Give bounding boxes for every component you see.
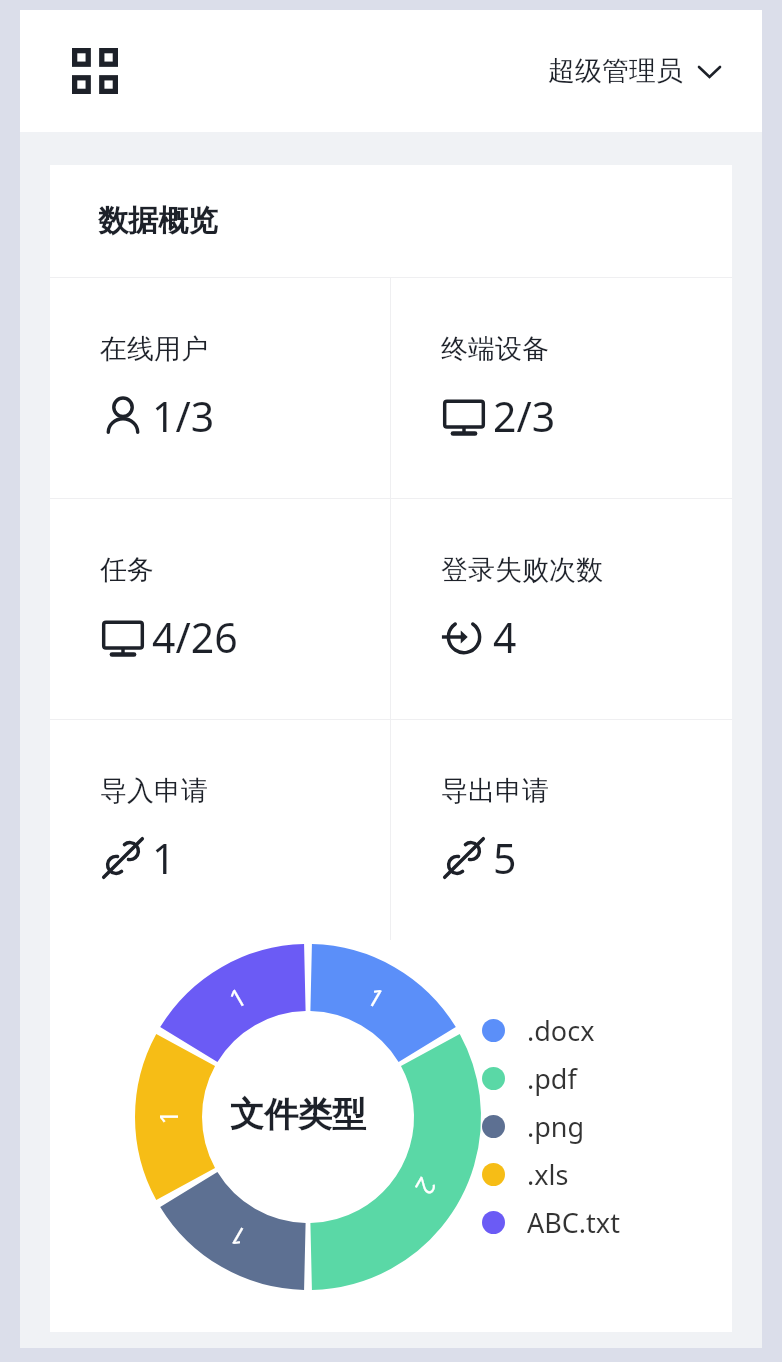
staticText: 1/3 xyxy=(152,388,215,444)
staticText: 终端设备 xyxy=(441,332,549,366)
button[interactable]: 在线用户 xyxy=(50,278,390,498)
staticText: 在线用户 xyxy=(100,332,208,366)
staticText: .pdf xyxy=(527,1060,577,1097)
button[interactable]: 登录失败次数 xyxy=(391,499,732,719)
staticText: 1 xyxy=(361,978,391,1015)
staticText: 4 xyxy=(493,609,517,665)
staticText: 数据概览 xyxy=(98,202,218,240)
staticText: .docx xyxy=(527,1012,595,1049)
staticText: 4/26 xyxy=(152,609,238,665)
staticText: 任务 xyxy=(100,553,154,587)
staticText: .png xyxy=(527,1108,585,1145)
staticText: 2 xyxy=(408,1172,445,1202)
button[interactable]: .png xyxy=(482,1102,585,1150)
staticText: 登录失败次数 xyxy=(441,553,603,587)
button[interactable]: 任务 xyxy=(50,499,390,719)
staticText: 文件类型 xyxy=(230,1093,366,1136)
button[interactable]: .docx xyxy=(482,1006,595,1054)
staticText: 导入申请 xyxy=(100,774,208,808)
button[interactable]: 导入申请 xyxy=(50,720,390,940)
button[interactable]: Apps menu xyxy=(66,42,124,100)
button[interactable]: .xls xyxy=(482,1150,569,1198)
button[interactable]: 终端设备 xyxy=(391,278,732,498)
staticText: ABC.txt xyxy=(527,1204,620,1241)
staticText: .xls xyxy=(527,1156,569,1193)
staticText: 5 xyxy=(493,830,517,886)
button[interactable]: 超级管理员 xyxy=(540,44,728,98)
staticText: 1 xyxy=(150,1109,184,1124)
staticText: 1 xyxy=(222,978,252,1015)
staticText: 2/3 xyxy=(493,388,556,444)
button[interactable]: 导出申请 xyxy=(391,720,732,940)
staticText: 超级管理员 xyxy=(548,54,683,88)
staticText: 1 xyxy=(152,830,176,886)
staticText: 导出申请 xyxy=(441,774,549,808)
button[interactable]: .pdf xyxy=(482,1054,577,1102)
staticText: 1 xyxy=(222,1218,252,1255)
button[interactable]: ABC.txt xyxy=(482,1198,620,1246)
